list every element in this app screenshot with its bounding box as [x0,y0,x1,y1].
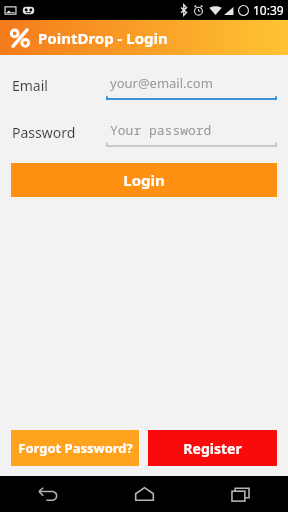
button[interactable]: Email [0,70,288,100]
staticText: Email [12,76,48,95]
button[interactable]: Recent apps [192,476,288,512]
staticText: your@email.com [110,74,213,92]
button[interactable]: Home [96,476,192,512]
staticText: PointDrop - Login [38,28,168,48]
staticText: Your password [110,121,212,139]
staticText: Register [183,439,242,458]
staticText: Login [123,170,165,190]
button[interactable]: Login [11,163,277,197]
button[interactable]: Password [0,117,288,147]
staticText: 10:39 [253,2,284,18]
button[interactable]: Register [148,430,277,466]
button[interactable]: Back [0,476,96,512]
staticText: Forgot Password? [18,439,133,457]
button[interactable]: Forgot Password? [11,430,139,466]
staticText: Password [12,123,76,142]
